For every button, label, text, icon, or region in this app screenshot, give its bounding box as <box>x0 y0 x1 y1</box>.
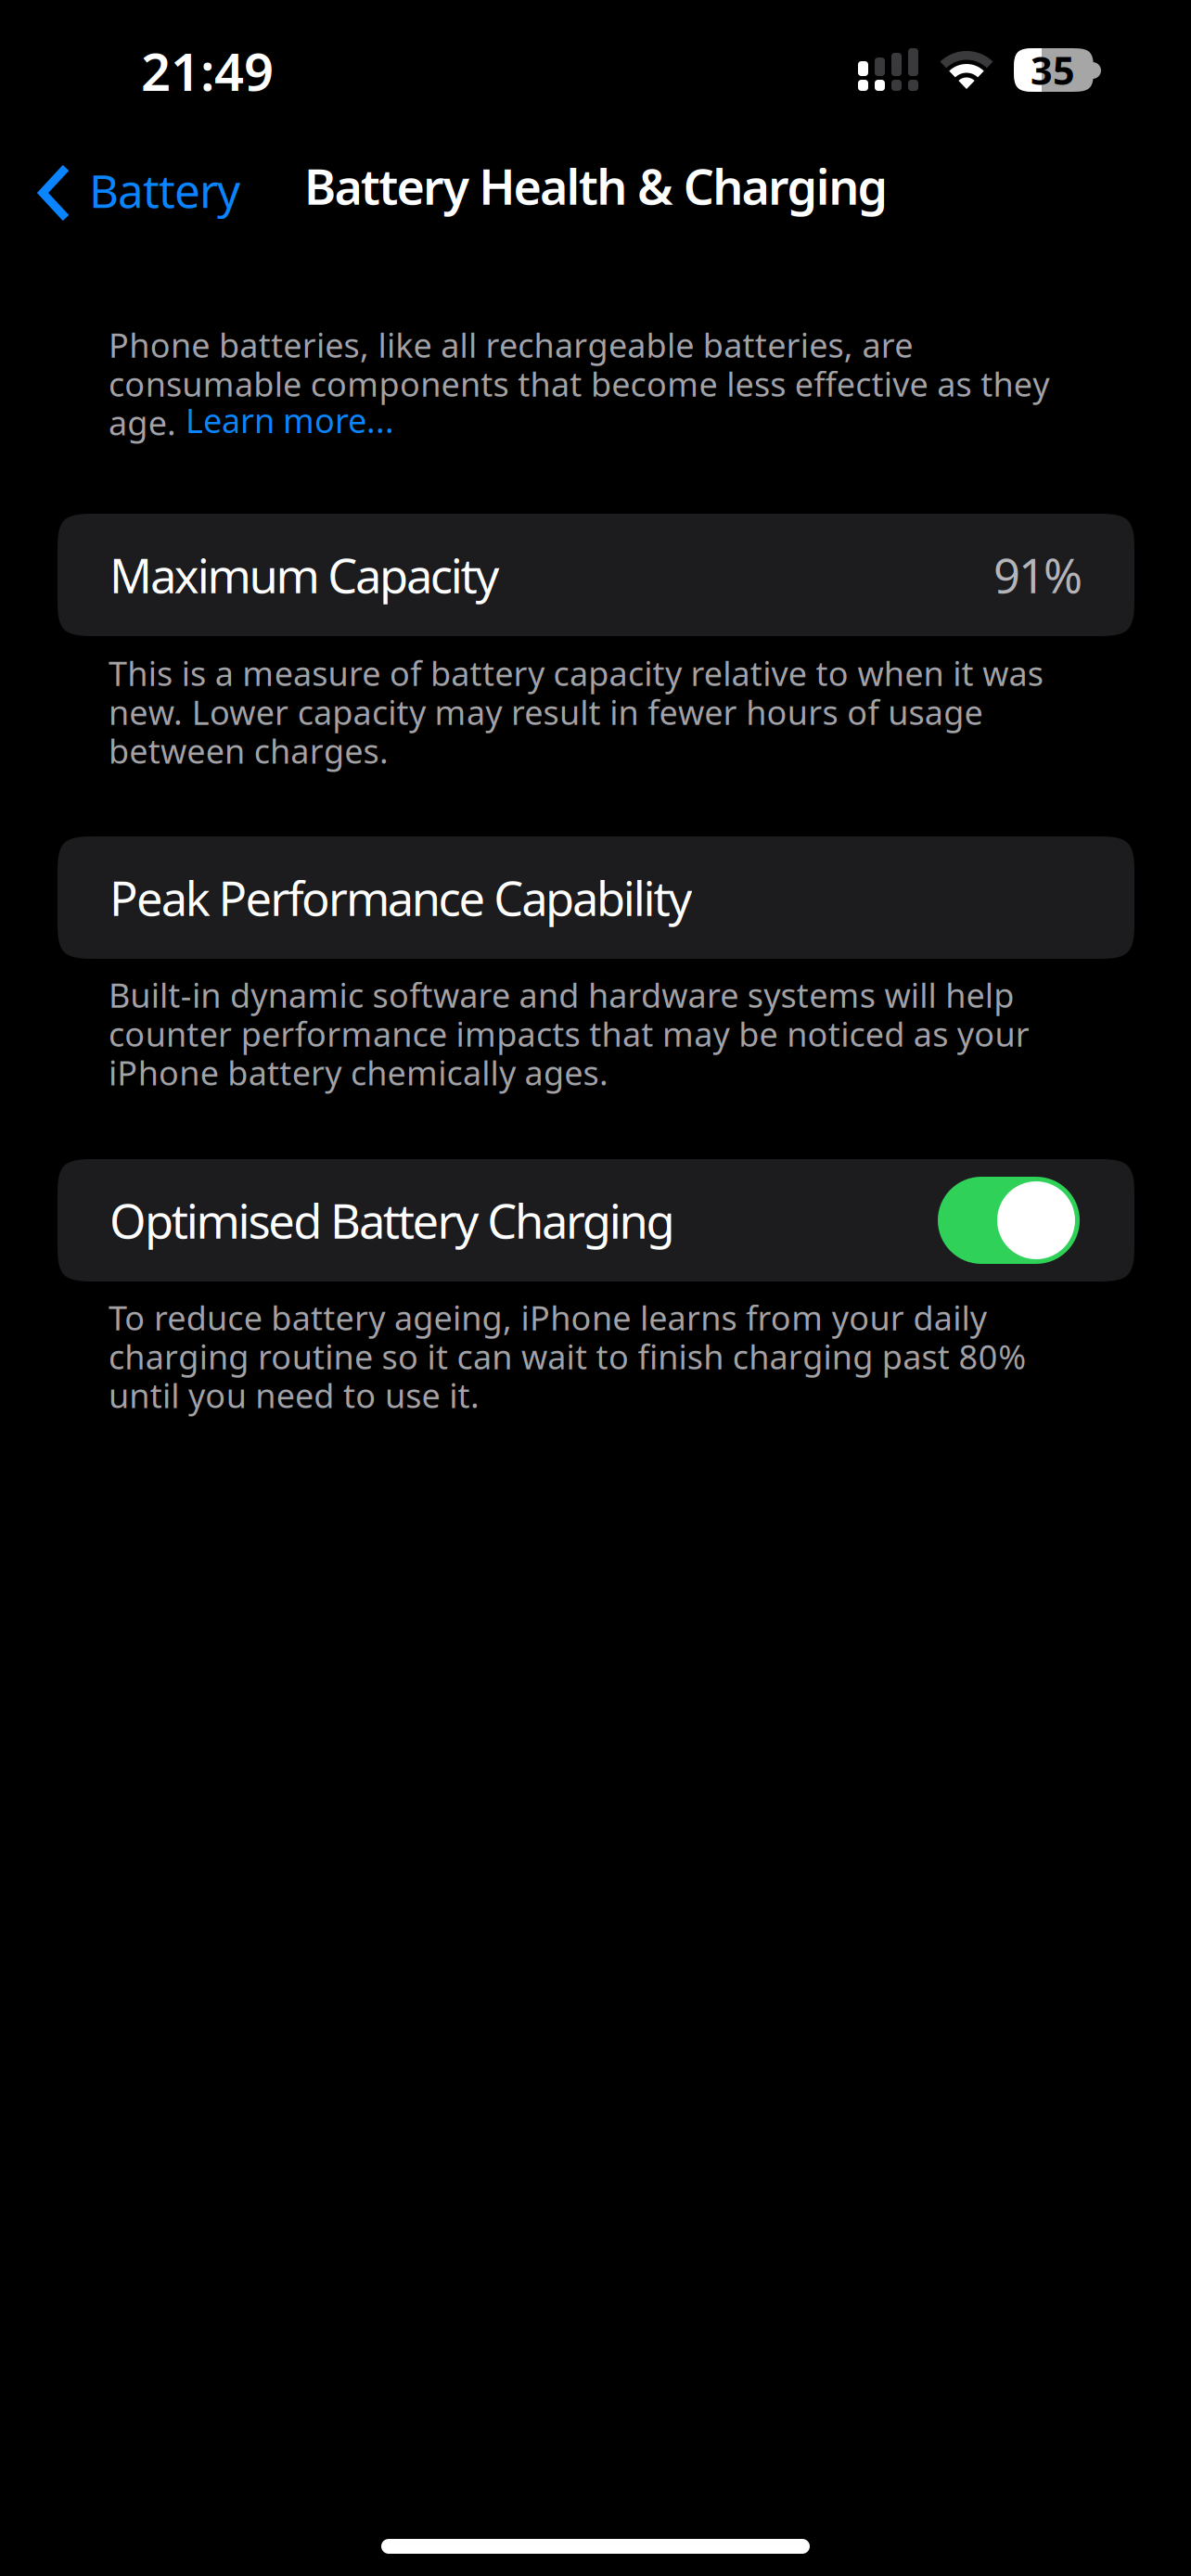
staticText: Phone batteries, like all rechargeable b… <box>109 323 1049 445</box>
staticText: 35 <box>1031 45 1075 96</box>
button[interactable]: Back to Battery <box>32 145 269 241</box>
staticText: Learn more... <box>186 398 394 442</box>
staticText: Battery <box>89 160 240 220</box>
staticText: This is a measure of battery capacity re… <box>109 651 1043 773</box>
staticText: Peak Performance Capability <box>109 866 692 929</box>
staticText: Maximum Capacity <box>109 544 499 606</box>
button[interactable]: Optimised Battery Charging, on <box>941 1177 1082 1264</box>
staticText: Built-in dynamic software and hardware s… <box>109 973 1029 1095</box>
button[interactable]: Optimised Battery Charging <box>58 1159 1134 1282</box>
staticText: 91% <box>993 544 1082 606</box>
button[interactable]: Learn more... <box>186 401 399 440</box>
button[interactable]: Peak Performance Capability <box>58 836 1134 959</box>
button[interactable]: Maximum Capacity <box>58 514 1134 636</box>
staticText: Optimised Battery Charging <box>109 1189 675 1252</box>
staticText: To reduce battery ageing, iPhone learns … <box>109 1295 1026 1417</box>
staticText: Battery Health & Charging <box>304 154 888 218</box>
staticText: 21:49 <box>141 36 274 105</box>
